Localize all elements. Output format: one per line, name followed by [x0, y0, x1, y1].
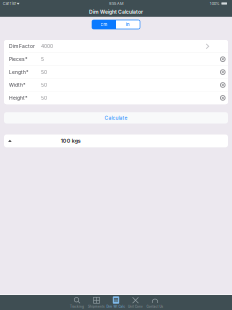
button[interactable]: Dim Wt Calc — [106, 295, 126, 310]
staticText: Shipments — [88, 305, 105, 308]
staticText: 5 — [41, 56, 44, 62]
staticText: 50 — [41, 95, 47, 101]
staticText: Height* — [9, 95, 27, 101]
staticText: 100% — [210, 1, 220, 6]
button[interactable]: Length* — [4, 66, 228, 78]
staticText: cm — [100, 22, 107, 27]
button[interactable]: Contact Us — [145, 295, 165, 310]
staticText: 100 kgs — [61, 138, 81, 144]
staticText: Unit Conv — [128, 305, 143, 308]
button[interactable]: Unit Conv — [126, 295, 145, 310]
staticText: 50 — [41, 69, 47, 75]
button[interactable]: Tracking — [67, 295, 87, 310]
staticText: 9:55 AM — [109, 1, 123, 6]
button[interactable]: 100 kgs — [4, 134, 228, 147]
staticText: 4000 — [41, 43, 53, 49]
button[interactable]: cm — [92, 20, 116, 29]
staticText: Contact Us — [146, 305, 163, 308]
button[interactable]: Height* — [4, 92, 228, 104]
staticText: Carrier — [3, 1, 16, 6]
button[interactable]: Pieces* — [4, 53, 228, 65]
button[interactable]: Width* — [4, 79, 228, 91]
staticText: Width* — [9, 82, 25, 88]
staticText: Dim Weight Calculator — [89, 9, 143, 15]
staticText: Dim Factor — [9, 43, 35, 49]
staticText: Tracking — [70, 305, 84, 308]
staticText: Dim Wt Calc — [106, 305, 125, 308]
button[interactable]: Calculate — [4, 112, 228, 123]
staticText: Calculate — [104, 115, 127, 121]
button[interactable]: Dim Factor — [4, 40, 228, 53]
staticText: 50 — [41, 82, 47, 88]
staticText: in — [126, 22, 130, 27]
button[interactable]: in — [116, 20, 140, 29]
staticText: Length* — [9, 69, 28, 75]
button[interactable]: Shipments — [87, 295, 106, 310]
staticText: Pieces* — [9, 56, 27, 62]
